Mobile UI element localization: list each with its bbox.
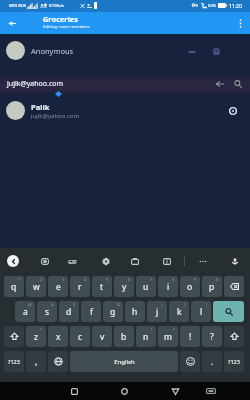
button[interactable]: s (37, 301, 57, 322)
button[interactable]: ?123 (4, 351, 24, 372)
button[interactable]: u (136, 276, 156, 297)
staticText: - (140, 302, 142, 307)
staticText: GIF (68, 258, 78, 265)
button[interactable]: Change keyboard language (48, 351, 68, 372)
button[interactable]: Search (230, 76, 246, 92)
button[interactable]: p (202, 276, 222, 297)
button[interactable]: x (48, 326, 68, 347)
staticText: ; (129, 327, 131, 332)
button[interactable]: Home (117, 384, 131, 398)
staticText: 3 (62, 277, 65, 282)
button[interactable]: ! (180, 326, 200, 347)
button[interactable]: Back (2, 13, 22, 33)
staticText: " (63, 327, 65, 332)
button[interactable]: a (15, 301, 35, 322)
staticText: : (107, 327, 109, 332)
button[interactable]: Search (213, 301, 244, 322)
staticText: English (114, 358, 135, 366)
button[interactable]: . (202, 351, 222, 372)
staticText: l (200, 306, 203, 318)
button[interactable]: Emoji (180, 351, 200, 372)
button[interactable]: v (92, 326, 112, 347)
button[interactable]: b (114, 326, 134, 347)
staticText: _ (96, 302, 98, 307)
button[interactable]: n (136, 326, 156, 347)
button[interactable]: Back (168, 384, 182, 398)
button[interactable]: , (26, 351, 46, 372)
button[interactable]: Invite options (210, 44, 223, 58)
staticText: s (45, 306, 50, 318)
button[interactable]: d (59, 301, 79, 322)
staticText: e (56, 281, 61, 293)
staticText: ' (86, 327, 87, 332)
staticText: ?123 (228, 358, 240, 365)
button[interactable]: Shift (4, 326, 24, 347)
button[interactable]: More options (196, 254, 210, 268)
staticText: y (122, 281, 127, 293)
button[interactable]: t (92, 276, 112, 297)
button[interactable]: Backspace (224, 276, 244, 297)
staticText: $ (73, 302, 76, 307)
staticText: 1 (18, 277, 21, 282)
button[interactable]: m (158, 326, 178, 347)
button[interactable]: Shift (224, 326, 244, 347)
staticText: jujik@yahoo.com (7, 79, 64, 89)
button[interactable]: g (103, 301, 123, 322)
button[interactable]: jujik@yahoo.com (0, 74, 250, 94)
button[interactable]: English (70, 351, 178, 372)
staticText: 8 (172, 277, 175, 282)
button[interactable]: Settings (99, 254, 113, 268)
button[interactable]: Voice input (228, 254, 242, 268)
button[interactable]: ? (202, 326, 222, 347)
button[interactable]: Select member (225, 103, 241, 119)
button[interactable]: Screenshot (204, 384, 218, 398)
staticText: 7 (150, 277, 153, 282)
button[interactable]: Notifications off (185, 44, 198, 58)
button[interactable]: k (169, 301, 189, 322)
button[interactable]: r (70, 276, 90, 297)
staticText: & (117, 302, 120, 307)
staticText: g (110, 306, 116, 318)
button[interactable]: y (114, 276, 134, 297)
button[interactable]: f (81, 301, 101, 322)
button[interactable]: h (125, 301, 145, 322)
staticText: u (143, 281, 149, 293)
staticText: 6 (128, 277, 131, 282)
button[interactable]: ?123 (224, 351, 244, 372)
button[interactable]: w (26, 276, 46, 297)
staticText: 9 (194, 277, 197, 282)
button[interactable]: e (48, 276, 68, 297)
button[interactable]: Back (212, 76, 228, 92)
staticText: 4 (84, 277, 87, 282)
button[interactable]: Palik (0, 94, 250, 127)
staticText: 63% (208, 3, 217, 9)
staticText: ( (184, 302, 186, 307)
button[interactable]: Recent apps (67, 384, 81, 398)
button[interactable]: More options (230, 13, 250, 33)
button[interactable]: Translate (160, 254, 174, 268)
staticText: Editing room members (43, 23, 90, 29)
staticText: Palik (31, 102, 50, 112)
button[interactable]: z (26, 326, 46, 347)
button[interactable]: Anonymous (0, 34, 250, 67)
button[interactable]: Clipboard (128, 254, 142, 268)
button[interactable]: Stickers (38, 254, 52, 268)
staticText: MTS RUS (9, 3, 26, 8)
staticText: 2 (40, 277, 43, 282)
staticText: p (209, 281, 215, 293)
button[interactable]: l (191, 301, 211, 322)
staticText: + (161, 302, 164, 307)
button[interactable]: o (180, 276, 200, 297)
button[interactable]: c (70, 326, 90, 347)
staticText: w (33, 281, 40, 293)
staticText: q (11, 281, 17, 293)
staticText: @ (28, 302, 32, 307)
button[interactable]: j (147, 301, 167, 322)
button[interactable]: GIF (65, 254, 81, 268)
staticText: 8728v/s (49, 3, 65, 9)
button[interactable]: i (158, 276, 178, 297)
button[interactable]: q (4, 276, 24, 297)
staticText: k (177, 306, 182, 318)
button[interactable]: Close keyboard toolbar (7, 255, 19, 267)
staticText: f (90, 306, 93, 318)
